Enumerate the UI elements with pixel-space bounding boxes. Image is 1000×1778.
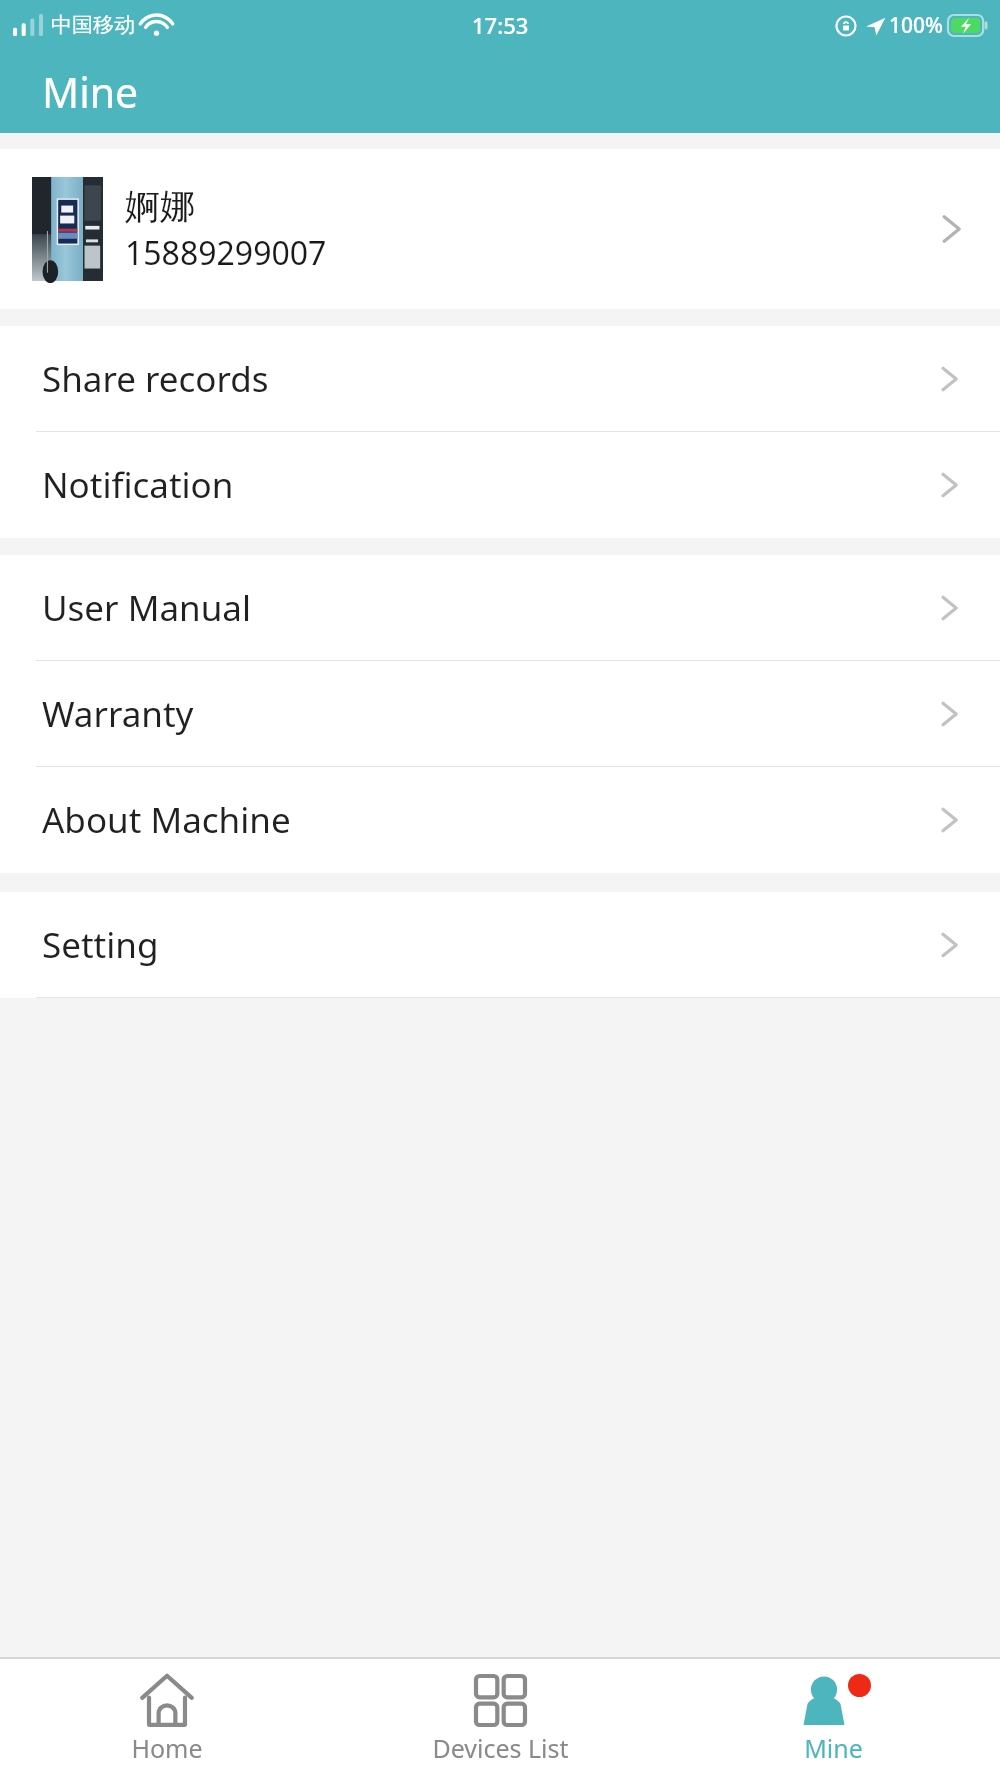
staticText: Mine (804, 1731, 863, 1765)
button[interactable]: Mine (667, 1659, 1000, 1778)
staticText: Mine (42, 64, 139, 120)
staticText: 中国移动 (51, 12, 135, 38)
button[interactable]: Warranty (0, 661, 1000, 766)
staticText: Notification (42, 461, 934, 509)
staticText: 婀娜 (125, 184, 195, 228)
staticText: Home (131, 1731, 203, 1765)
button[interactable]: Devices List (334, 1659, 667, 1778)
button[interactable]: Home (0, 1659, 334, 1778)
staticText: Setting (42, 921, 934, 969)
button[interactable]: Setting (0, 892, 1000, 997)
staticText: 15889299007 (125, 231, 327, 275)
staticText: Warranty (42, 690, 934, 738)
button[interactable]: About Machine (0, 767, 1000, 873)
button[interactable]: Notification (0, 432, 1000, 538)
staticText: About Machine (42, 796, 934, 844)
staticText: Share records (42, 355, 934, 403)
staticText: Devices List (432, 1731, 569, 1765)
button[interactable]: User Manual (0, 555, 1000, 660)
staticText: 100% (889, 11, 943, 40)
staticText: 17:53 (472, 10, 529, 40)
staticText: User Manual (42, 584, 934, 632)
button[interactable]: Share records (0, 326, 1000, 431)
button[interactable]: 婀娜 (0, 149, 1000, 309)
